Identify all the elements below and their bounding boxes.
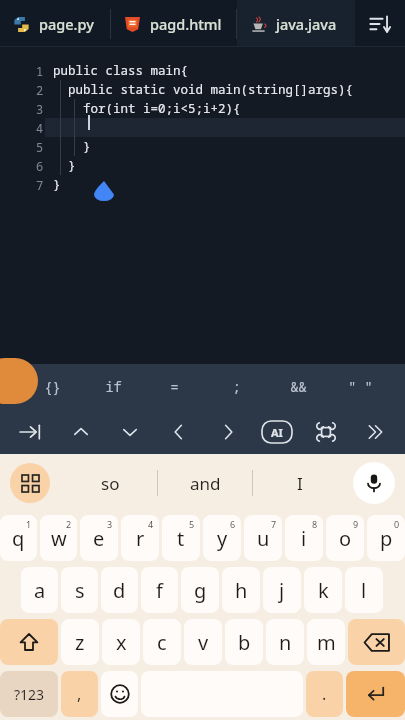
staticText: u [257,525,270,552]
staticText: r [136,525,145,552]
button[interactable]: " " [329,364,391,410]
button[interactable]: Emoji [61,671,98,717]
staticText: if [105,378,122,396]
button[interactable]: = [144,364,205,410]
button[interactable]: and [158,454,252,512]
staticText: x [116,629,127,656]
staticText: 9 [353,518,359,530]
staticText: {} [44,378,61,396]
button[interactable]: t [162,515,200,561]
button[interactable]: Down [105,410,154,454]
button[interactable]: java.java [237,0,355,47]
staticText: 0 [394,518,400,530]
button[interactable]: Right [203,410,252,454]
staticText: t [177,525,185,552]
button[interactable]: e [80,515,118,561]
button[interactable]: s [61,567,98,613]
staticText: w [51,525,67,552]
staticText: 1 [26,518,32,530]
button[interactable]: I [253,454,347,512]
button[interactable]: v [184,619,222,665]
button[interactable]: k [304,567,342,613]
staticText: n [279,629,292,656]
button[interactable]: ?123 [0,671,58,717]
staticText: 4 [36,120,44,136]
button[interactable]: g [181,567,219,613]
button[interactable]: Emoji picker [101,671,138,717]
staticText: I [297,472,303,495]
button[interactable]: pagd.html [111,0,236,47]
staticText: o [339,525,352,552]
button[interactable]: Left [154,410,203,454]
staticText: = [170,378,179,396]
button[interactable]: m [307,619,345,665]
staticText: && [290,378,307,396]
staticText: g [194,577,207,604]
button[interactable]: w [40,515,77,561]
staticText: h [235,577,248,604]
button[interactable]: ; [205,364,267,410]
staticText: c [157,629,167,656]
button[interactable]: r [121,515,159,561]
staticText: b [238,629,251,656]
staticText: } [53,157,76,174]
button[interactable]: y [203,515,241,561]
button[interactable]: Sort [355,0,405,47]
button[interactable]: Shift [0,619,58,665]
staticText: e [93,525,105,552]
staticText: q [12,525,25,552]
button[interactable]: l [345,567,383,613]
staticText: d [113,577,126,604]
staticText: v [198,629,209,656]
button[interactable]: if [83,364,144,410]
staticText: pagd.html [150,14,222,34]
button[interactable]: j [263,567,301,613]
staticText: " " [348,378,373,396]
staticText: , [77,683,82,705]
button[interactable]: Backspace [348,619,405,665]
button[interactable]: p [367,515,405,561]
button[interactable]: a [21,567,58,613]
button[interactable]: b [225,619,263,665]
button[interactable]: q [0,515,37,561]
staticText: 3 [36,101,44,117]
button[interactable]: Tab [6,410,56,454]
staticText: 6 [230,518,236,530]
button[interactable]: . [306,671,343,717]
button[interactable]: z [61,619,99,665]
button[interactable]: x [102,619,140,665]
staticText: j [279,577,285,604]
button[interactable]: i [285,515,323,561]
button[interactable]: Voice input [353,462,395,504]
button[interactable]: && [267,364,329,410]
button[interactable]: {} [22,364,83,410]
button[interactable]: Up [56,410,105,454]
button[interactable]: More [350,410,399,454]
button[interactable]: Command [301,410,350,454]
staticText: and [190,472,221,495]
button[interactable]: d [101,567,138,613]
button[interactable]: so [64,454,157,512]
button[interactable]: u [244,515,282,561]
button[interactable]: n [266,619,304,665]
button[interactable]: Enter [346,671,405,717]
button[interactable]: Assistant [0,358,38,404]
staticText: 8 [312,518,318,530]
staticText: AI [271,425,283,440]
staticText: ?123 [14,685,45,704]
button[interactable]: c [143,619,181,665]
staticText: java.java [276,14,337,34]
button[interactable]: AI [252,410,301,454]
staticText: } [53,176,61,193]
staticText: 4 [148,518,154,530]
button[interactable]: h [222,567,260,613]
staticText: 5 [189,518,195,530]
button[interactable]: f [141,567,178,613]
staticText: z [75,629,85,656]
staticText: . [322,683,327,705]
button[interactable]: o [326,515,364,561]
staticText: s [75,577,85,604]
button[interactable]: Apps [10,463,50,503]
button[interactable]: page.py [0,0,110,47]
